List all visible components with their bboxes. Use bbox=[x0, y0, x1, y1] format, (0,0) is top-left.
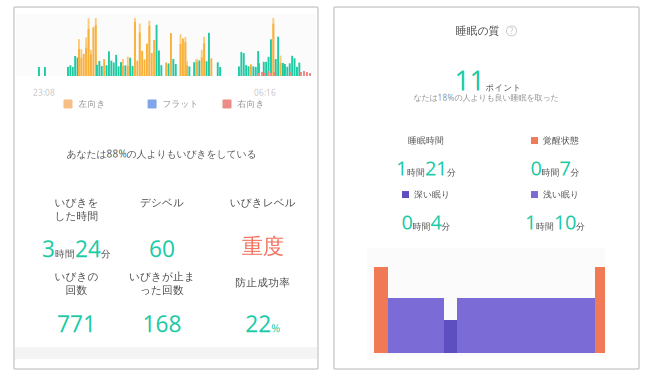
staticText: 60 bbox=[149, 233, 175, 264]
staticText: 右向き bbox=[237, 98, 264, 109]
staticText: いびきを bbox=[54, 196, 98, 209]
staticText: 覚醒状態 bbox=[543, 135, 579, 146]
staticText: ? bbox=[509, 25, 513, 37]
staticText: 睡眠の質 bbox=[455, 24, 499, 38]
staticText: 168 bbox=[142, 308, 181, 339]
staticText: デシベル bbox=[140, 196, 184, 209]
staticText: 0 bbox=[401, 208, 412, 235]
staticText: 21 bbox=[425, 154, 447, 181]
staticText: 1 bbox=[525, 208, 536, 235]
staticText: 7 bbox=[559, 154, 570, 181]
staticText: あなたは88%の人よりもいびきをしている bbox=[66, 147, 256, 160]
staticText: した時間 bbox=[54, 209, 98, 223]
staticText: 防止成功率 bbox=[235, 276, 290, 289]
staticText: 睡眠時間 bbox=[408, 135, 444, 146]
staticText: 分 bbox=[576, 221, 585, 232]
staticText: 回数 bbox=[65, 283, 87, 297]
staticText: 24 bbox=[75, 233, 101, 264]
staticText: 深い眠り bbox=[414, 189, 450, 200]
staticText: 分 bbox=[101, 248, 111, 260]
staticText: ポイント bbox=[485, 82, 521, 93]
staticText: 22 bbox=[245, 308, 271, 339]
staticText: 23:08 bbox=[33, 87, 55, 98]
staticText: 分 bbox=[447, 167, 456, 178]
staticText: 時間 bbox=[541, 167, 559, 178]
staticText: 重度 bbox=[242, 233, 284, 260]
staticText: 時間 bbox=[536, 221, 554, 232]
staticText: % bbox=[271, 321, 280, 335]
staticText: 11 bbox=[454, 62, 484, 98]
staticText: 3 bbox=[42, 233, 55, 264]
staticText: った回数 bbox=[140, 283, 184, 297]
staticText: いびきの bbox=[54, 270, 98, 283]
staticText: 分 bbox=[441, 221, 450, 232]
staticText: 左向き bbox=[78, 98, 105, 109]
staticText: 0 bbox=[530, 154, 541, 181]
staticText: 4 bbox=[430, 208, 441, 235]
staticText: 06:16 bbox=[254, 87, 276, 98]
staticText: 10 bbox=[554, 208, 576, 235]
staticText: 771 bbox=[57, 308, 96, 339]
staticText: 1 bbox=[396, 154, 407, 181]
staticText: いびきレベル bbox=[230, 196, 296, 209]
staticText: なたは18%の人よりも良い睡眠を取った bbox=[413, 92, 558, 103]
staticText: いびきが止ま bbox=[129, 270, 195, 283]
staticText: 時間 bbox=[407, 167, 425, 178]
staticText: フラット bbox=[163, 98, 199, 109]
staticText: 浅い眠り bbox=[543, 189, 579, 200]
staticText: 分 bbox=[570, 167, 579, 178]
staticText: 時間 bbox=[412, 221, 430, 232]
staticText: 時間 bbox=[55, 248, 75, 260]
